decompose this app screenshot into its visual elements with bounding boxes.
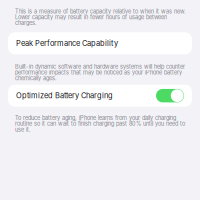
staticText: This is a measure of battery capacity re… <box>15 8 186 26</box>
staticText: To reduce battery aging, iPhone learns f… <box>15 115 185 133</box>
button[interactable]: Peak Performance Capability <box>8 32 192 54</box>
button[interactable]: Optimized Battery Charging, on <box>156 89 184 102</box>
staticText: Built-in dynamic software and hardware s… <box>15 63 185 82</box>
staticText: Optimized Battery Charging <box>16 91 113 100</box>
staticText: Peak Performance Capability <box>16 39 118 48</box>
button[interactable]: Optimized Battery Charging <box>8 85 192 107</box>
